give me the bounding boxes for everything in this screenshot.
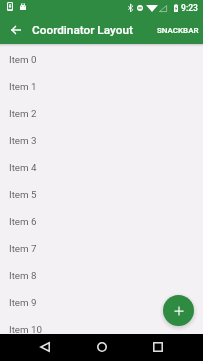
button[interactable]: Navigate up bbox=[4, 18, 27, 41]
button[interactable]: Item 1 bbox=[0, 73, 203, 100]
staticText: Item 5 bbox=[9, 189, 37, 200]
staticText: Item 10 bbox=[9, 324, 43, 334]
button[interactable]: Item 10 bbox=[0, 316, 203, 334]
button[interactable]: Item 0 bbox=[0, 46, 203, 73]
button[interactable]: Recent apps bbox=[146, 335, 170, 359]
button[interactable]: Item 4 bbox=[0, 154, 203, 181]
button[interactable]: Back bbox=[33, 335, 57, 359]
button[interactable]: Item 3 bbox=[0, 127, 203, 154]
staticText: Item 1 bbox=[9, 81, 37, 92]
button[interactable]: Add bbox=[163, 295, 194, 326]
button[interactable]: Item 2 bbox=[0, 100, 203, 127]
staticText: Item 2 bbox=[9, 108, 37, 119]
staticText: Item 8 bbox=[9, 270, 37, 281]
staticText: SNACKBAR bbox=[157, 26, 199, 35]
button[interactable]: SNACKBAR bbox=[151, 19, 203, 42]
staticText: Item 7 bbox=[9, 243, 37, 254]
staticText: 9:23 bbox=[181, 3, 198, 13]
staticText: Item 3 bbox=[9, 135, 37, 146]
staticText: Item 0 bbox=[9, 54, 37, 65]
button[interactable]: Home bbox=[90, 335, 114, 359]
button[interactable]: Item 6 bbox=[0, 208, 203, 235]
button[interactable]: Item 9 bbox=[0, 289, 203, 316]
button[interactable]: Item 7 bbox=[0, 235, 203, 262]
staticText: Item 4 bbox=[9, 162, 37, 173]
staticText: Item 9 bbox=[9, 297, 37, 308]
staticText: Coordinator Layout bbox=[32, 23, 133, 37]
button[interactable]: Item 5 bbox=[0, 181, 203, 208]
staticText: Item 6 bbox=[9, 216, 37, 227]
button[interactable]: Item 8 bbox=[0, 262, 203, 289]
